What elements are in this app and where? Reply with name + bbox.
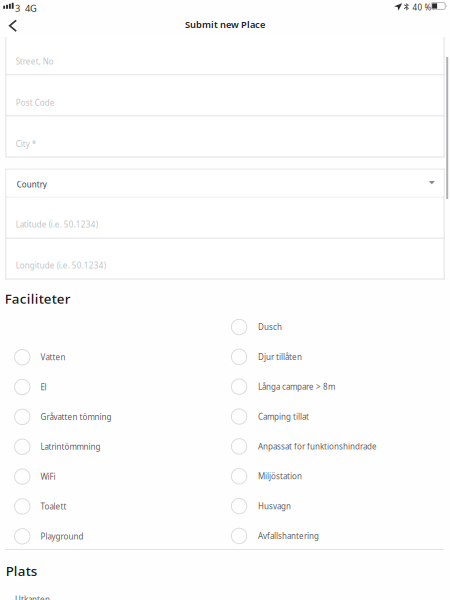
staticText: Vatten (41, 352, 66, 362)
button[interactable]: Latrintömmning (15, 435, 195, 459)
staticText: Djur tillåten (258, 351, 302, 362)
staticText: Latrintömmning (41, 441, 101, 452)
staticText: Longitude (i.e. 50.1234) (16, 260, 106, 271)
staticText: Country (17, 179, 47, 190)
staticText: Långa campare > 8m (258, 381, 335, 392)
button[interactable]: Husvagn (231, 494, 416, 518)
button[interactable]: Dusch (231, 315, 416, 339)
staticText: Plats (6, 562, 37, 580)
button[interactable]: Playground (15, 524, 195, 548)
staticText: Miljöstation (258, 471, 302, 481)
staticText: Gråvatten tömning (41, 412, 112, 422)
staticText: Street, No (16, 56, 54, 67)
staticText: City * (16, 139, 36, 149)
staticText: Faciliteter (5, 290, 71, 307)
staticText: 3 (15, 2, 20, 14)
button[interactable]: Anpassat för funktionshindrade (231, 434, 416, 458)
staticText: WiFi (41, 471, 56, 482)
staticText: Husvagn (258, 501, 291, 511)
button[interactable]: Gråvatten tömning (15, 405, 195, 429)
button[interactable]: Avfallshantering (231, 524, 416, 548)
staticText: Camping tillat (258, 411, 309, 422)
button[interactable]: Djur tillåten (231, 345, 416, 369)
button[interactable]: Back (0, 18, 26, 42)
staticText: Toalett (41, 501, 67, 512)
button[interactable]: Toalett (15, 494, 195, 518)
button[interactable]: Miljöstation (231, 464, 416, 488)
button[interactable]: Country (6, 170, 443, 197)
staticText: Avfallshantering (258, 531, 319, 541)
staticText: 40 % (413, 2, 432, 13)
staticText: Dusch (258, 322, 282, 332)
staticText: Anpassat för funktionshindrade (258, 441, 377, 452)
staticText: Post Code (16, 97, 55, 108)
staticText: El (41, 382, 47, 392)
button[interactable]: Camping tillat (231, 405, 416, 429)
button[interactable]: Långa campare > 8m (231, 375, 416, 399)
staticText: Submit new Place (185, 18, 265, 31)
staticText: 4G (25, 2, 37, 14)
staticText: Latitude (i.e. 50.1234) (16, 219, 98, 230)
button[interactable]: WiFi (15, 465, 195, 489)
button[interactable]: El (15, 375, 195, 399)
staticText: Playground (41, 531, 84, 542)
button[interactable]: Vatten (15, 345, 195, 369)
staticText: Utkanten (15, 594, 50, 600)
